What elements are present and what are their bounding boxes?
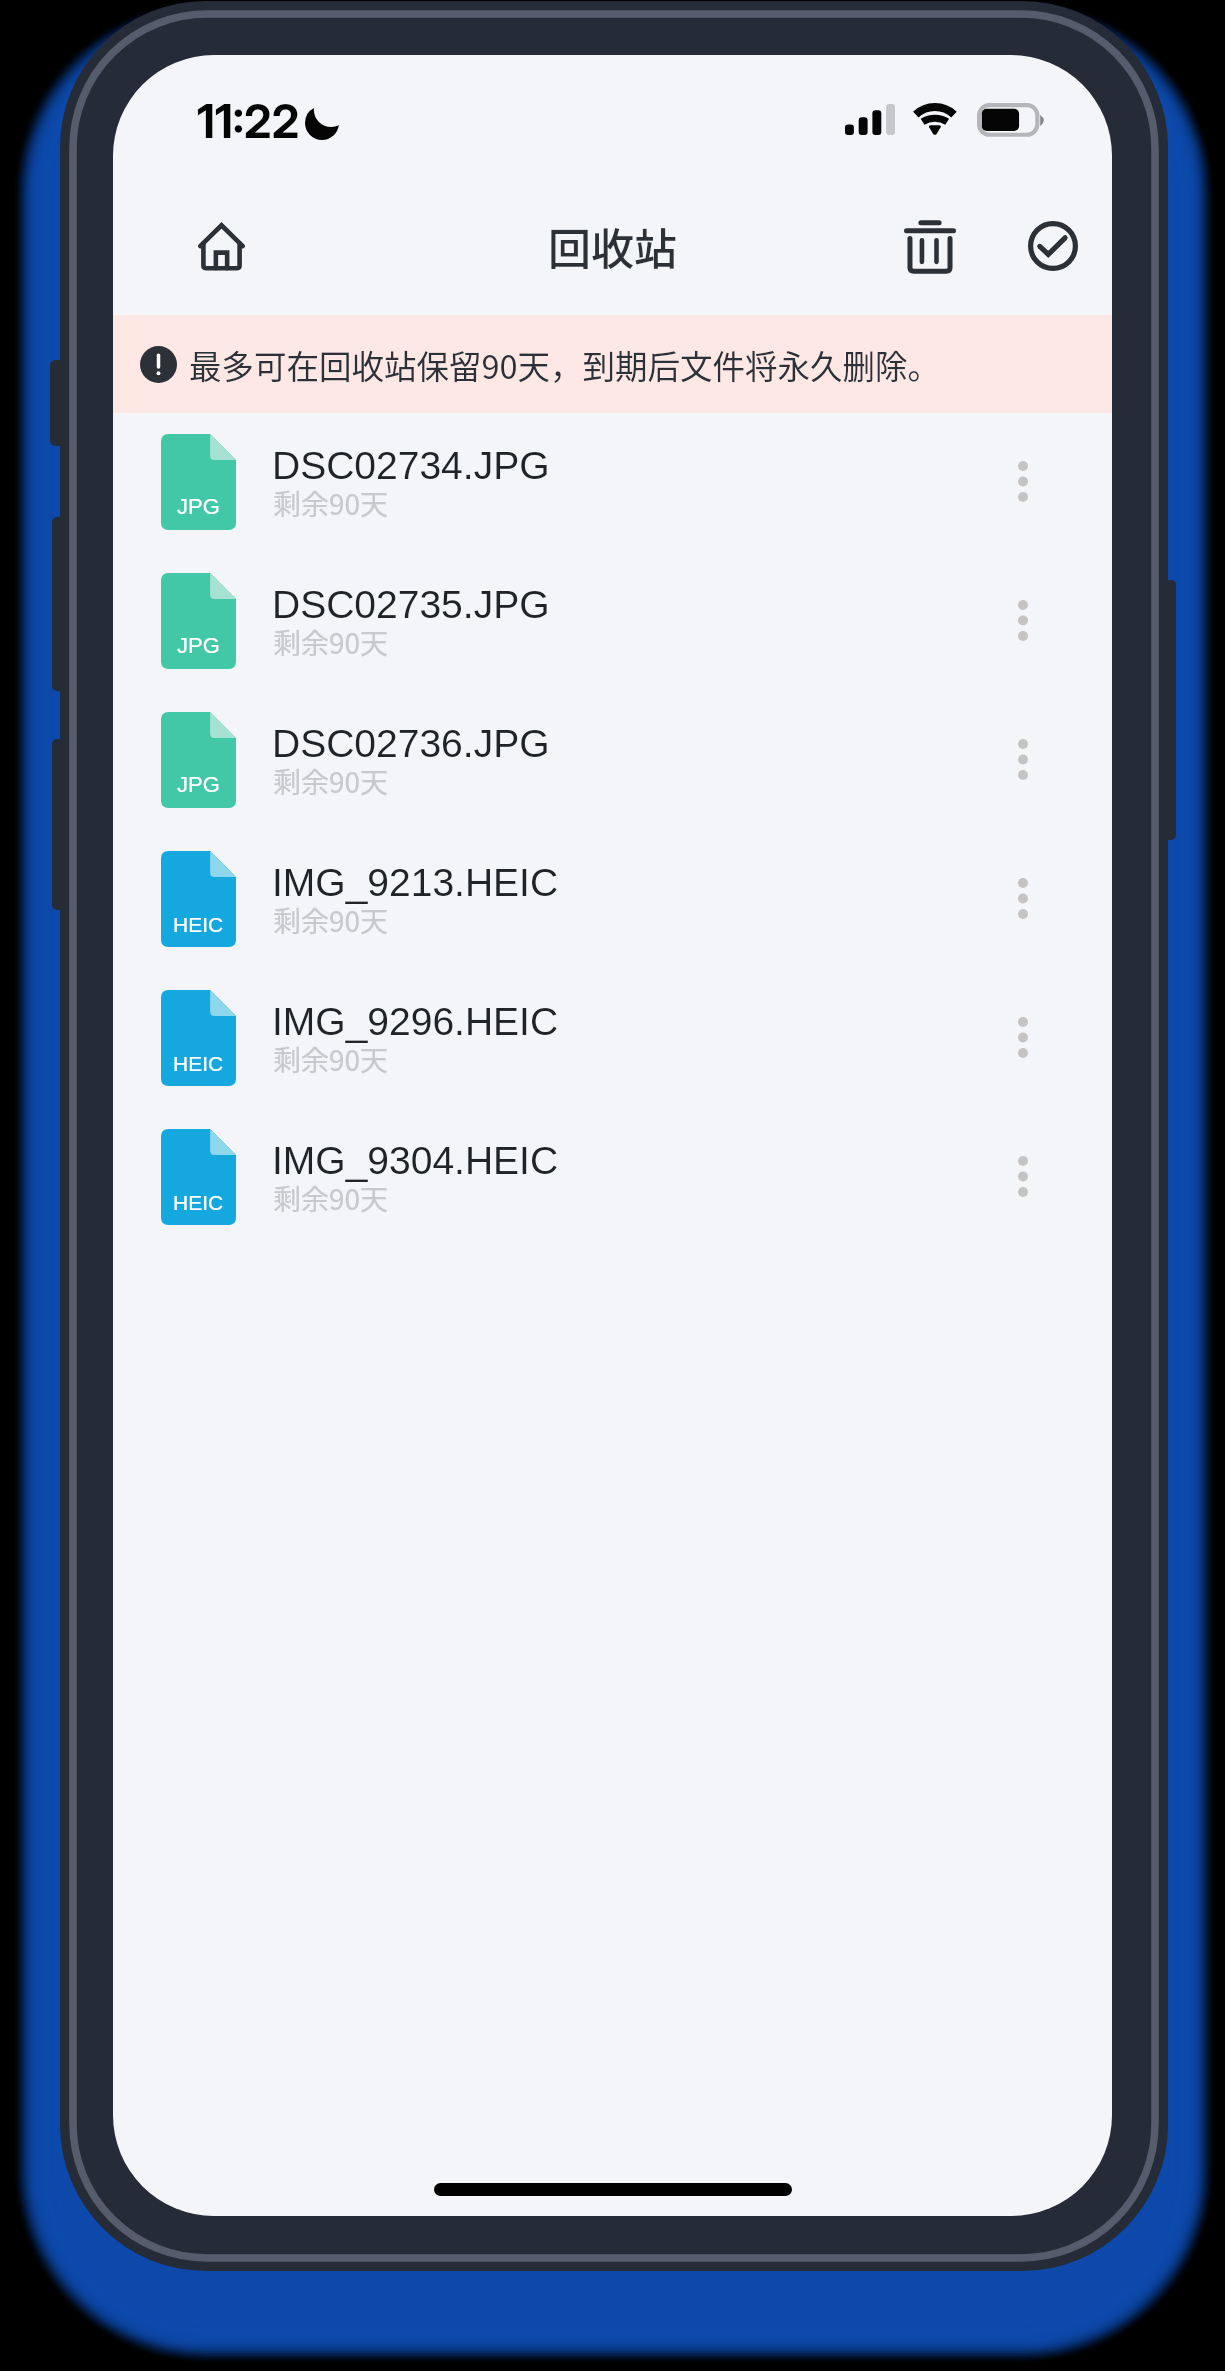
staticText: HEIC [173, 1052, 224, 1075]
button[interactable]: JPG [113, 413, 1112, 552]
button[interactable]: Select all [1000, 193, 1106, 299]
staticText: DSC02736.JPG [272, 722, 550, 766]
staticText: 11:22 [197, 93, 300, 149]
staticText: 剩余90天 [273, 622, 389, 663]
button[interactable]: JPG [113, 691, 1112, 830]
staticText: IMG_9213.HEIC [272, 861, 559, 905]
button[interactable]: JPG [113, 552, 1112, 691]
staticText: 剩余90天 [273, 761, 389, 802]
staticText: 剩余90天 [273, 483, 389, 524]
button[interactable]: Home [168, 193, 274, 299]
button[interactable]: HEIC [113, 1108, 1112, 1247]
button[interactable]: More options [978, 714, 1068, 804]
button[interactable]: More options [978, 853, 1068, 943]
button[interactable]: HEIC [113, 969, 1112, 1108]
button[interactable]: More options [978, 575, 1068, 665]
staticText: JPG [177, 494, 220, 519]
staticText: 回收站 [548, 215, 677, 277]
staticText: 剩余90天 [273, 900, 389, 941]
staticText: IMG_9296.HEIC [272, 1000, 559, 1044]
staticText: JPG [177, 772, 220, 797]
staticText: DSC02734.JPG [272, 444, 550, 488]
button[interactable]: HEIC [113, 830, 1112, 969]
button[interactable]: Delete [877, 193, 983, 299]
staticText: 最多可在回收站保留90天，到期后文件将永久删除。 [189, 341, 941, 388]
button[interactable]: More options [978, 1131, 1068, 1221]
button[interactable]: More options [978, 992, 1068, 1082]
staticText: 剩余90天 [273, 1178, 389, 1219]
staticText: 剩余90天 [273, 1039, 389, 1080]
staticText: IMG_9304.HEIC [272, 1139, 559, 1183]
staticText: DSC02735.JPG [272, 583, 550, 627]
staticText: HEIC [173, 1191, 224, 1214]
staticText: HEIC [173, 913, 224, 936]
staticText: JPG [177, 633, 220, 658]
button[interactable]: More options [978, 436, 1068, 526]
